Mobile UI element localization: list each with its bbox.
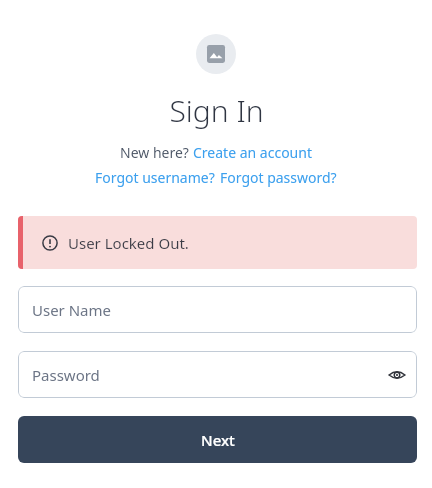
button[interactable]: Create an account [193,143,312,162]
staticText: Forgot password? [220,168,337,187]
staticText: New here? [120,143,193,162]
staticText: Create an account [193,143,312,162]
staticText: Password [32,365,100,385]
staticText: User Locked Out. [68,233,189,253]
other: App logo [196,34,236,74]
button[interactable]: Forgot password? [220,168,337,187]
button[interactable]: Password [18,351,417,398]
staticText: Forgot username? [95,168,215,187]
button[interactable]: Show password [377,355,417,395]
button[interactable]: Next [18,416,417,463]
button[interactable]: Forgot username? [95,168,215,187]
button[interactable]: User Name [18,286,417,333]
staticText: Next [201,430,235,450]
staticText: User Name [32,300,112,320]
staticText: Sign In [169,90,264,131]
